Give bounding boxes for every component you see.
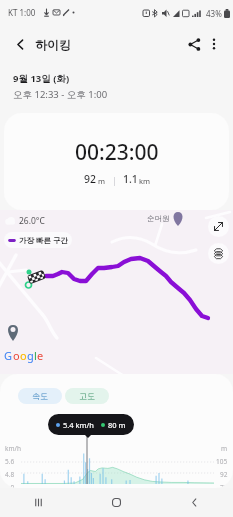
staticText: m: [221, 444, 228, 453]
staticText: l: [34, 348, 37, 363]
button[interactable]: Recents: [0, 488, 77, 517]
staticText: G: [4, 348, 13, 363]
button[interactable]: Expand map: [208, 216, 229, 237]
button[interactable]: More options: [200, 30, 228, 58]
staticText: 5.4 km/h: [63, 420, 94, 430]
staticText: e: [37, 348, 44, 363]
staticText: km/h: [5, 444, 21, 453]
staticText: o: [20, 348, 27, 363]
staticText: 4.0: [5, 483, 15, 488]
button[interactable]: 속도: [18, 388, 62, 404]
staticText: 오후 12:33 - 오후 1:00: [13, 88, 108, 101]
staticText: 9월 13일 (화): [13, 72, 70, 85]
staticText: 43%: [206, 8, 222, 19]
staticText: km: [139, 176, 151, 186]
staticText: 속도: [32, 391, 48, 401]
staticText: 4.8: [5, 470, 15, 479]
staticText: 가장 빠른 구간: [19, 235, 68, 245]
staticText: 26.0°C: [19, 215, 45, 227]
button[interactable]: Back: [6, 30, 34, 58]
staticText: 5.6: [5, 457, 15, 466]
button[interactable]: Back: [155, 488, 233, 517]
staticText: 00:23:00: [75, 138, 159, 167]
button[interactable]: Map layers: [208, 243, 229, 264]
staticText: g: [27, 348, 34, 363]
staticText: 1.1: [123, 172, 138, 186]
staticText: 80 m: [108, 420, 126, 430]
button[interactable]: Home: [77, 488, 155, 517]
staticText: KT 1:00: [8, 7, 36, 18]
staticText: 고도: [79, 391, 95, 401]
staticText: 78: [220, 483, 228, 488]
staticText: 하이킹: [35, 37, 71, 52]
button[interactable]: 00:23:00: [4, 113, 229, 210]
staticText: 순머원: [147, 214, 170, 223]
staticText: 105: [216, 457, 228, 466]
staticText: o: [13, 348, 20, 363]
button[interactable]: Share: [180, 30, 208, 58]
staticText: 92: [84, 172, 97, 186]
staticText: m: [98, 176, 106, 186]
staticText: 92: [220, 470, 228, 479]
button[interactable]: 가장 빠른 구간: [8, 235, 68, 245]
button[interactable]: 고도: [65, 388, 109, 404]
